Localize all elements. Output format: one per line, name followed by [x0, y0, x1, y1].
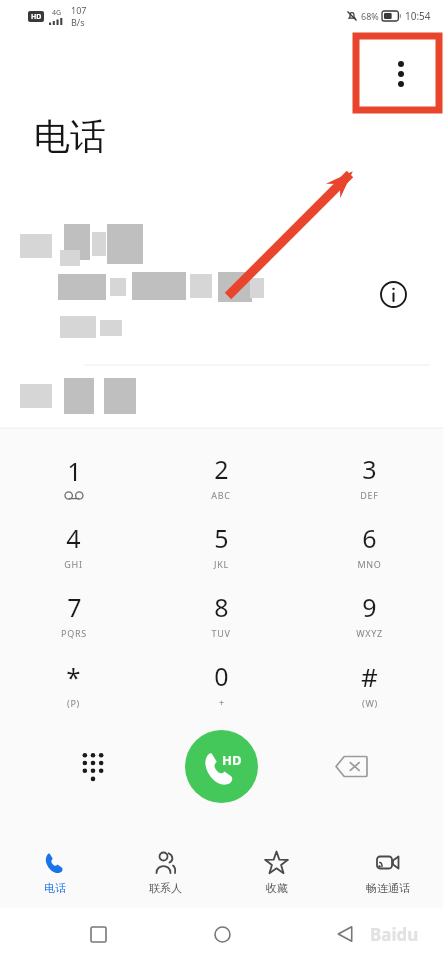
staticText: # [361, 659, 378, 694]
staticText: MNO [357, 558, 382, 570]
button[interactable]: 3 [295, 442, 443, 511]
staticText: TUV [211, 627, 231, 639]
staticText: 107 [71, 4, 87, 16]
staticText: + [219, 696, 225, 708]
staticText: 0 [214, 659, 229, 693]
button[interactable]: 8 [147, 580, 295, 649]
staticText: 9 [362, 590, 377, 624]
button[interactable]: Back [319, 908, 371, 960]
button[interactable]: 5 [147, 511, 295, 580]
staticText: GHI [64, 558, 83, 570]
staticText: * [66, 659, 81, 694]
staticText: WXYZ [356, 627, 383, 639]
staticText: 4G [52, 8, 62, 18]
button[interactable]: 畅连通话 [332, 836, 443, 908]
button[interactable]: 1 [0, 442, 147, 511]
button[interactable]: # [295, 649, 443, 718]
button[interactable]: Hide dialpad [55, 728, 131, 804]
staticText: 收藏 [266, 881, 288, 895]
button[interactable]: 9 [295, 580, 443, 649]
staticText: (P) [67, 697, 80, 709]
staticText: 5 [214, 521, 229, 555]
staticText: JKL [214, 558, 229, 570]
staticText: HD [222, 751, 242, 769]
button[interactable]: 联系人 [110, 836, 221, 908]
button[interactable]: Delete [313, 728, 389, 804]
staticText: 电话 [34, 114, 106, 159]
staticText: 10:54 [405, 9, 431, 23]
staticText: (W) [362, 697, 378, 709]
staticText: 6 [362, 521, 377, 555]
staticText: 8 [214, 590, 229, 624]
button[interactable]: 2 [147, 442, 295, 511]
staticText: 畅连通话 [366, 881, 410, 895]
staticText: 2 [214, 452, 229, 486]
button[interactable]: 6 [295, 511, 443, 580]
staticText: 1 [67, 454, 82, 488]
staticText: 7 [67, 590, 82, 624]
button[interactable]: Call details [371, 272, 415, 316]
staticText: 联系人 [149, 881, 182, 895]
button[interactable]: 4 [0, 511, 147, 580]
button[interactable]: 电话 [0, 836, 110, 908]
button[interactable]: 收藏 [221, 836, 332, 908]
staticText: 68% [361, 10, 379, 22]
staticText: HD [31, 12, 42, 22]
button[interactable]: More options [367, 40, 435, 108]
button[interactable]: 7 [0, 580, 147, 649]
staticText: 电话 [44, 881, 66, 895]
button[interactable]: Call [185, 730, 258, 803]
staticText: B/s [71, 16, 85, 28]
staticText: DEF [360, 489, 379, 501]
button[interactable]: * [0, 649, 147, 718]
button[interactable]: 0 [147, 649, 295, 718]
button[interactable]: Recent apps [72, 908, 124, 960]
staticText: PQRS [61, 627, 87, 639]
staticText: ABC [211, 489, 231, 501]
staticText: 4 [66, 521, 81, 555]
staticText: 3 [362, 452, 377, 486]
staticText: Baidu [370, 923, 419, 946]
button[interactable]: Home [196, 908, 248, 960]
